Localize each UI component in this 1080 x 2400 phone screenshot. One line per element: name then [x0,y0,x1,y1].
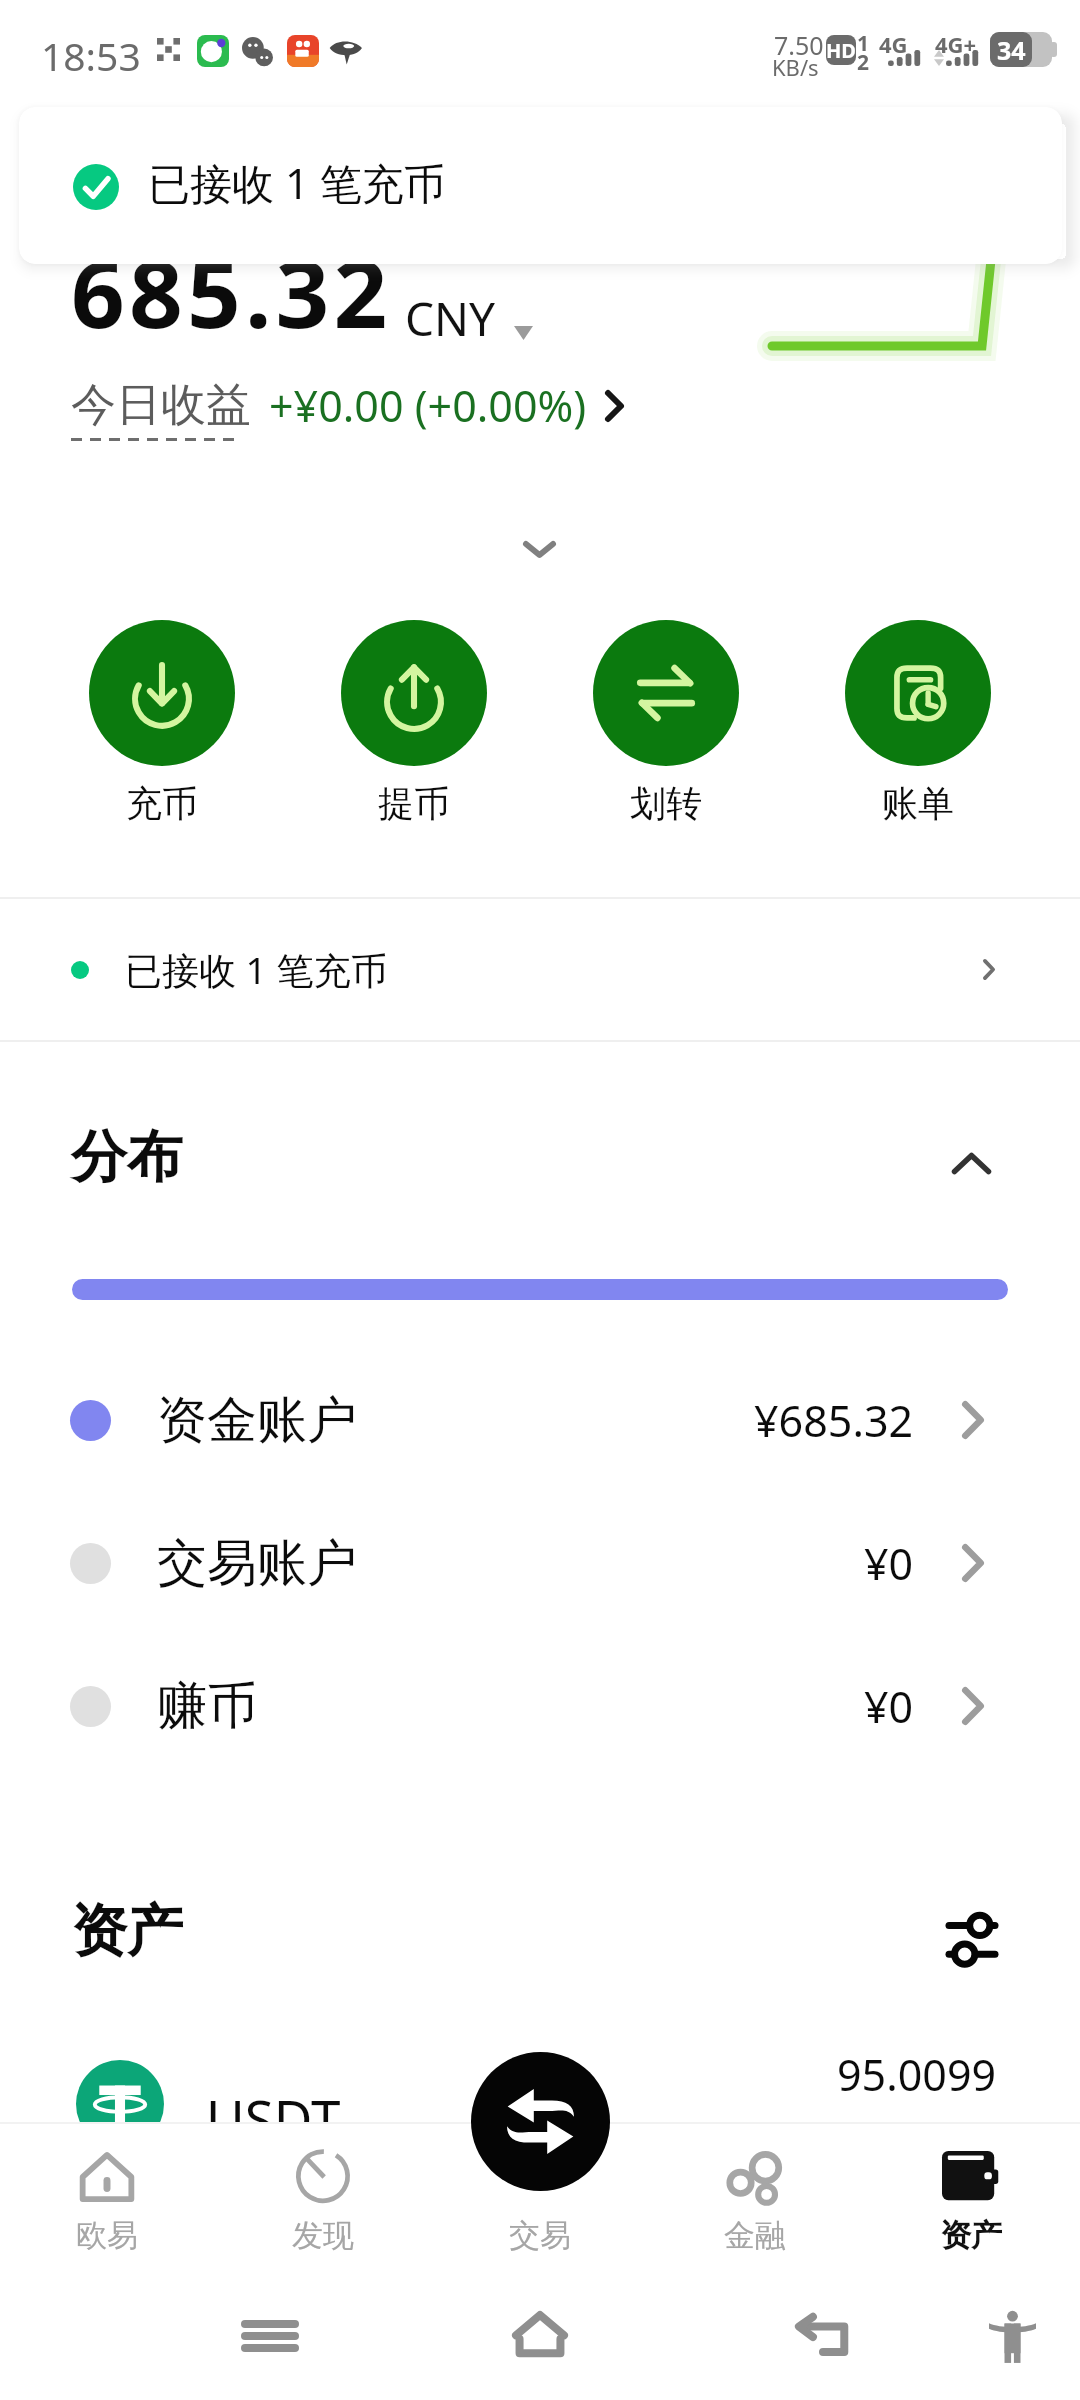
staticText: 交易账户 [157,1532,357,1595]
button[interactable]: USDT [0,2060,1080,2180]
button[interactable]: 发现 [233,2147,413,2255]
staticText: 4G+ [935,29,977,59]
staticText: +¥0.00 (+0.00%) [269,376,587,435]
staticText: 提币 [378,781,450,826]
button[interactable]: 今日收益 [71,376,624,435]
button[interactable]: 划转 [576,620,756,826]
staticText: 2 [857,48,870,77]
button[interactable]: 欧易 [17,2147,197,2255]
staticText: 分布 [71,1122,183,1193]
button[interactable]: Accessibility [989,2310,1036,2364]
staticText: ¥685.32 [754,1391,914,1450]
staticText: KB/s [772,52,819,82]
staticText: 4G [879,29,908,59]
staticText: 685.32 [71,228,392,356]
staticText: 今日收益 [71,377,251,434]
staticText: 金融 [724,2216,786,2255]
button[interactable]: 分布 [0,1100,1080,1215]
staticText: 已接收 1 笔充币 [148,154,446,211]
staticText: 18:53 [41,29,141,82]
button[interactable]: 赚币 [0,1635,1080,1777]
staticText: ¥0 [864,1677,914,1736]
staticText: 充币 [126,781,198,826]
button[interactable]: 账单 [828,620,1008,826]
staticText: 资产 [940,2216,1002,2255]
button[interactable]: 金融 [665,2147,845,2255]
staticText: 欧易 [76,2216,138,2255]
staticText: 发现 [292,2216,354,2255]
button[interactable]: 提币 [324,620,504,826]
button[interactable]: 交易 [450,2147,630,2255]
button[interactable]: Filter [941,1909,1003,1971]
staticText: 1 [857,29,870,58]
button[interactable]: Back [795,2316,851,2358]
button[interactable]: 充币 [72,620,252,826]
button[interactable]: 资金账户 [0,1349,1080,1491]
staticText: 账单 [882,781,954,826]
staticText: 资产 [71,1896,183,1967]
staticText: 95.0099 [837,2045,997,2104]
staticText: 赚币 [157,1675,257,1738]
staticText: 资金账户 [157,1389,357,1452]
staticText: HD [826,37,856,64]
staticText: CNY [405,287,496,350]
button[interactable]: Trade [471,2052,610,2191]
button[interactable]: 交易账户 [0,1492,1080,1634]
button[interactable]: Recent apps [243,2320,297,2352]
staticText: 34 [997,33,1026,67]
button[interactable]: Home [512,2311,568,2356]
staticText: ¥0 [864,1534,914,1593]
staticText: 交易 [509,2216,571,2255]
staticText: 7.50 [774,28,824,62]
button[interactable]: 已接收 1 笔充币 [19,107,1062,264]
button[interactable]: 资产 [881,2147,1061,2255]
button[interactable]: 已接收 1 笔充币 [0,899,1080,1040]
staticText: USDT [206,2082,341,2154]
staticText: 已接收 1 笔充币 [125,944,388,995]
staticText: 划转 [630,781,702,826]
